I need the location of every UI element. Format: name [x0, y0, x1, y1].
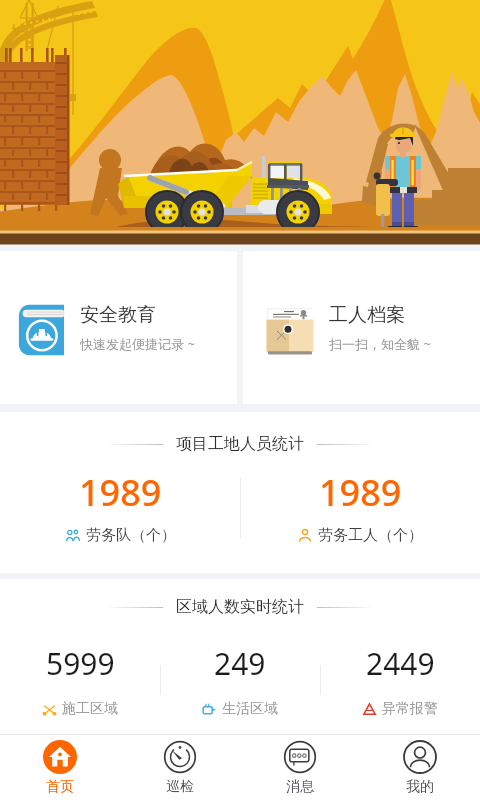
staticText: 项目工地人员统计 — [176, 434, 304, 454]
staticText: 扫一扫，知全貌 ~ — [329, 335, 431, 353]
staticText: 消息 — [286, 778, 314, 796]
staticText: 劳务工人（个） — [318, 526, 423, 545]
staticText: 249 — [214, 643, 266, 684]
staticText: 施工区域 — [62, 700, 118, 718]
staticText: 区域人数实时统计 — [176, 597, 304, 617]
staticText: 我的 — [406, 778, 434, 796]
staticText: 生活区域 — [222, 700, 278, 718]
button[interactable]: 安全教育 — [0, 251, 237, 404]
staticText: 巡检 — [166, 778, 194, 796]
staticText: 5999 — [46, 643, 115, 684]
staticText: 2449 — [366, 643, 435, 684]
staticText: 安全教育 — [80, 303, 156, 327]
staticText: 劳务队（个） — [86, 526, 176, 545]
button[interactable]: 消息 — [240, 735, 360, 800]
staticText: 工人档案 — [329, 303, 405, 327]
button[interactable]: 巡检 — [120, 735, 240, 800]
staticText: 快速发起便捷记录 ~ — [80, 335, 195, 353]
staticText: 1989 — [319, 468, 402, 517]
staticText: 首页 — [46, 778, 74, 796]
staticText: 异常报警 — [382, 700, 438, 718]
button[interactable]: 我的 — [360, 735, 480, 800]
button[interactable]: 工人档案 — [243, 251, 480, 404]
staticText: 1989 — [79, 468, 162, 517]
button[interactable]: 首页 — [0, 735, 120, 800]
